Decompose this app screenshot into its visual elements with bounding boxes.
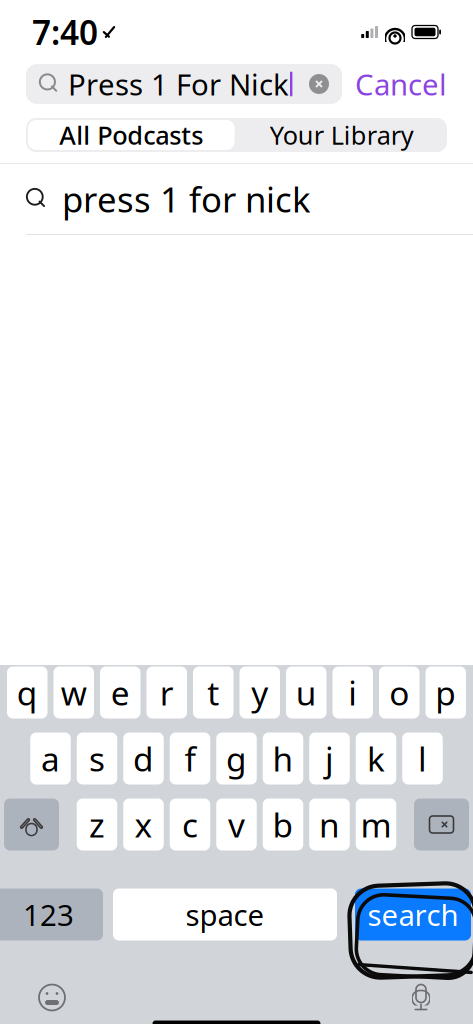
- button[interactable]: k: [356, 732, 396, 784]
- button[interactable]: Shift: [4, 798, 59, 850]
- staticText: p: [435, 670, 456, 715]
- staticText: c: [182, 802, 198, 847]
- staticText: All Podcasts: [59, 118, 203, 152]
- button[interactable]: Clear text: [309, 74, 329, 94]
- button[interactable]: space: [113, 888, 337, 940]
- button[interactable]: Dictation: [395, 974, 447, 1020]
- staticText: r: [160, 670, 174, 715]
- button[interactable]: 123: [0, 888, 103, 940]
- staticText: u: [296, 670, 317, 715]
- button[interactable]: f: [170, 732, 210, 784]
- staticText: b: [272, 802, 293, 847]
- staticText: search: [367, 895, 458, 934]
- staticText: g: [226, 736, 247, 781]
- staticText: Your Library: [270, 118, 414, 152]
- staticText: 123: [23, 895, 74, 934]
- button[interactable]: Your Library: [236, 118, 447, 152]
- staticText: t: [207, 670, 219, 715]
- staticText: x: [134, 802, 152, 847]
- button[interactable]: w: [53, 666, 94, 718]
- staticText: l: [418, 736, 427, 781]
- button[interactable]: u: [286, 666, 326, 718]
- button[interactable]: All Podcasts: [26, 118, 236, 152]
- button[interactable]: d: [123, 732, 164, 784]
- staticText: d: [133, 736, 154, 781]
- staticText: a: [41, 736, 60, 781]
- button[interactable]: v: [216, 798, 257, 850]
- button[interactable]: m: [356, 798, 396, 850]
- button[interactable]: b: [263, 798, 303, 850]
- button[interactable]: h: [263, 732, 303, 784]
- staticText: j: [325, 736, 334, 781]
- button[interactable]: p: [425, 666, 466, 718]
- staticText: o: [389, 670, 409, 715]
- button[interactable]: Cancel: [355, 64, 447, 103]
- staticText: k: [367, 736, 385, 781]
- button[interactable]: i: [332, 666, 373, 718]
- button[interactable]: g: [216, 732, 257, 784]
- button[interactable]: j: [309, 732, 350, 784]
- button[interactable]: Delete: [414, 798, 469, 850]
- staticText: press 1 for nick: [62, 176, 311, 222]
- staticText: e: [111, 670, 130, 715]
- staticText: s: [89, 736, 105, 781]
- staticText: y: [251, 670, 268, 715]
- staticText: v: [228, 802, 245, 847]
- button[interactable]: x: [123, 798, 164, 850]
- button[interactable]: n: [309, 798, 350, 850]
- button[interactable]: press 1 for nick: [0, 164, 473, 235]
- staticText: m: [360, 802, 391, 847]
- staticText: i: [348, 670, 357, 715]
- button[interactable]: l: [402, 732, 443, 784]
- staticText: z: [89, 802, 105, 847]
- staticText: n: [319, 802, 340, 847]
- button[interactable]: q: [7, 666, 47, 718]
- button[interactable]: e: [100, 666, 140, 718]
- button[interactable]: z: [77, 798, 117, 850]
- button[interactable]: s: [77, 732, 117, 784]
- staticText: w: [61, 670, 87, 715]
- staticText: 7:40: [32, 10, 98, 54]
- button[interactable]: Emoji keyboard: [26, 974, 78, 1020]
- button[interactable]: o: [379, 666, 419, 718]
- button[interactable]: t: [193, 666, 233, 718]
- staticText: space: [185, 895, 264, 934]
- staticText: f: [184, 736, 195, 781]
- button[interactable]: c: [170, 798, 210, 850]
- staticText: h: [272, 736, 293, 781]
- button[interactable]: y: [239, 666, 280, 718]
- button[interactable]: search: [355, 888, 471, 940]
- button[interactable]: a: [30, 732, 71, 784]
- staticText: Cancel: [355, 64, 447, 103]
- staticText: q: [17, 670, 38, 715]
- staticText: Press 1 For Nick: [68, 64, 289, 103]
- button[interactable]: r: [146, 666, 187, 718]
